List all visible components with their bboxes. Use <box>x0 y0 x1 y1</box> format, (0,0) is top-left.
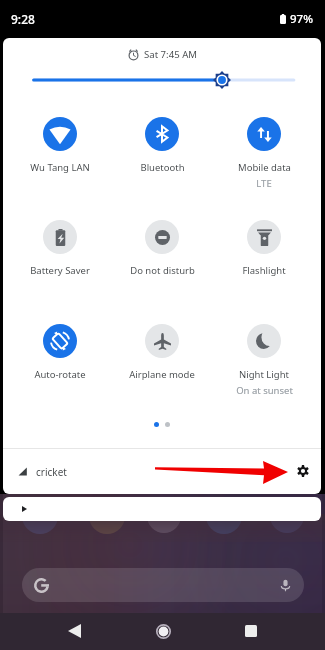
staticText: Battery Saver <box>30 264 90 277</box>
staticText: Night Light <box>239 368 289 381</box>
staticText: On at sunset <box>236 384 293 397</box>
staticText: Auto-rotate <box>34 368 86 381</box>
staticText: Wu Tang LAN <box>30 161 90 174</box>
staticText: Do not disturb <box>130 264 195 277</box>
button[interactable]: Recents <box>231 612 271 650</box>
button[interactable]: Do not disturb <box>111 220 213 306</box>
staticText: 97% <box>290 11 313 27</box>
staticText: cricket <box>36 465 67 479</box>
staticText: Mobile data <box>238 161 291 174</box>
button[interactable]: Search <box>22 568 304 602</box>
staticText: LTE <box>256 177 272 190</box>
button[interactable]: Auto-rotate <box>9 324 111 410</box>
button[interactable]: Settings <box>292 461 314 483</box>
staticText: Sat 7:45 AM <box>144 48 197 61</box>
staticText: Bluetooth <box>140 161 185 174</box>
button[interactable]: Airplane mode <box>111 324 213 410</box>
staticText: 9:28 <box>11 11 35 27</box>
button[interactable]: Home <box>143 612 183 650</box>
staticText: Airplane mode <box>129 368 195 381</box>
button[interactable]: Wu Tang LAN <box>9 117 111 203</box>
button[interactable]: Mobile data <box>213 117 315 203</box>
button[interactable]: Night Light <box>213 324 315 410</box>
button[interactable]: Battery Saver <box>9 220 111 306</box>
staticText: Flashlight <box>242 264 286 277</box>
button[interactable]: Bluetooth <box>111 117 213 203</box>
button[interactable]: Back <box>54 612 94 650</box>
button[interactable]: Flashlight <box>213 220 315 306</box>
